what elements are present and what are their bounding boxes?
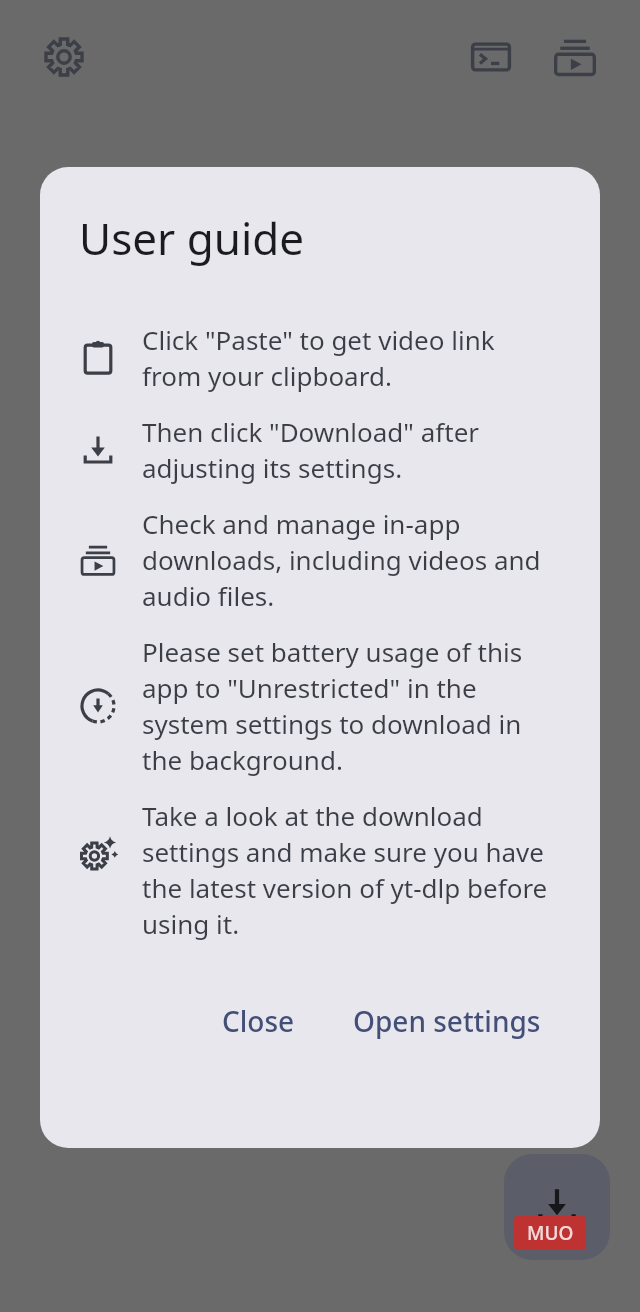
button[interactable]: Open settings bbox=[339, 992, 555, 1050]
staticText: Then click "Download" after adjusting it… bbox=[142, 414, 552, 486]
staticText: Please set battery usage of this app to … bbox=[142, 634, 552, 778]
staticText: MUO bbox=[527, 1220, 574, 1246]
staticText: Close bbox=[222, 1002, 295, 1040]
button[interactable]: Terminal bbox=[468, 34, 514, 80]
staticText: Check and manage in-app downloads, inclu… bbox=[142, 506, 552, 614]
staticText: Take a look at the download settings and… bbox=[142, 798, 552, 942]
staticText: Click "Paste" to get video link from you… bbox=[142, 322, 552, 394]
button[interactable]: Settings bbox=[41, 34, 87, 80]
staticText: User guide bbox=[79, 208, 305, 268]
button[interactable]: Download bbox=[504, 1154, 610, 1260]
staticText: Open settings bbox=[353, 1002, 541, 1040]
button[interactable]: Close bbox=[208, 992, 309, 1050]
button[interactable]: Downloads bbox=[552, 34, 598, 80]
